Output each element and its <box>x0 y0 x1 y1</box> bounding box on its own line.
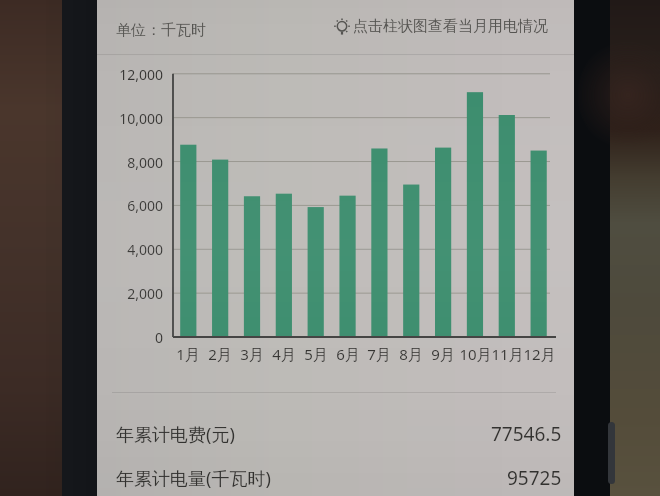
staticText: 点击柱状图查看当月用电情况 <box>353 17 548 36</box>
staticText: 8月 <box>399 344 423 364</box>
staticText: 7月 <box>367 344 391 364</box>
staticText: 11月 <box>491 344 524 364</box>
staticText: 6月 <box>336 344 360 364</box>
staticText: 95725 <box>507 465 562 491</box>
staticText: 10,000 <box>119 109 163 128</box>
other: 提示 <box>333 18 351 36</box>
staticText: 10月 <box>459 344 492 364</box>
button[interactable]: 点击柱状图查看当月用电情况 <box>333 17 548 36</box>
staticText: 4月 <box>272 344 296 364</box>
staticText: 单位：千瓦时 <box>116 21 206 40</box>
staticText: 3月 <box>240 344 264 364</box>
staticText: 1月 <box>176 344 200 364</box>
staticText: 2月 <box>208 344 232 364</box>
staticText: 9月 <box>431 344 455 364</box>
staticText: 4,000 <box>127 240 163 259</box>
staticText: 6,000 <box>127 196 163 215</box>
staticText: 2,000 <box>127 284 163 303</box>
staticText: 12,000 <box>119 65 163 84</box>
button[interactable]: 年累计电费(元) <box>97 417 574 451</box>
staticText: 0 <box>154 328 163 347</box>
staticText: 8,000 <box>127 153 163 172</box>
staticText: 5月 <box>304 344 328 364</box>
staticText: 年累计电费(元) <box>116 422 235 447</box>
button[interactable]: 年累计电量(千瓦时) <box>97 461 574 495</box>
staticText: 77546.5 <box>491 421 562 447</box>
staticText: 年累计电量(千瓦时) <box>116 466 271 491</box>
staticText: 12月 <box>523 344 556 364</box>
